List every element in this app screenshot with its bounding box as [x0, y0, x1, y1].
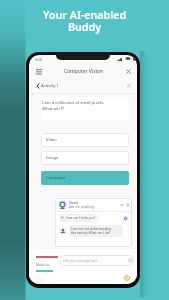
- other: Minimize: [120, 203, 124, 207]
- button[interactable]: Talk your message here: [59, 255, 135, 266]
- staticText: I am a collection of small pixels.: [42, 100, 105, 106]
- other: Settings: [128, 258, 133, 263]
- button[interactable]: Menu: [29, 63, 137, 79]
- other: Close: [126, 69, 131, 74]
- button[interactable]: Back: [29, 79, 137, 93]
- staticText: Image: [46, 155, 59, 161]
- staticText: Computer: [46, 175, 66, 181]
- staticText: Talk your message here: [63, 259, 98, 263]
- other: Donu avatar: [58, 200, 67, 209]
- staticText: Make su: [36, 262, 50, 267]
- staticText: Donu: [69, 200, 79, 205]
- button[interactable]: Image: [41, 151, 129, 165]
- other: User avatar: [59, 227, 67, 235]
- staticText: 9:30: [35, 57, 42, 62]
- other: Back: [36, 83, 40, 89]
- staticText: Your AI-enabled: [43, 8, 127, 23]
- staticText: Video: [46, 137, 57, 143]
- other: Menu: [36, 69, 42, 73]
- button[interactable]: Computer: [41, 171, 129, 185]
- staticText: Hi, how can I help you?: [61, 216, 96, 220]
- button[interactable]: Make su: [36, 256, 64, 272]
- staticText: this activity. What can I do?: [71, 231, 111, 235]
- staticText: Computer Vision: [64, 68, 103, 75]
- staticText: Activity 1: [41, 83, 59, 89]
- staticText: Ask me anything: [69, 205, 94, 209]
- button[interactable]: Record: [36, 277, 43, 284]
- staticText: What am I?: [42, 106, 65, 112]
- button[interactable]: Video: [41, 133, 129, 147]
- button[interactable]: Assistant: [124, 275, 130, 281]
- staticText: Buddy: [68, 20, 102, 35]
- other: Flag: [127, 84, 131, 88]
- other: Close chat: [126, 203, 130, 207]
- staticText: I am not not understanding: [71, 227, 112, 231]
